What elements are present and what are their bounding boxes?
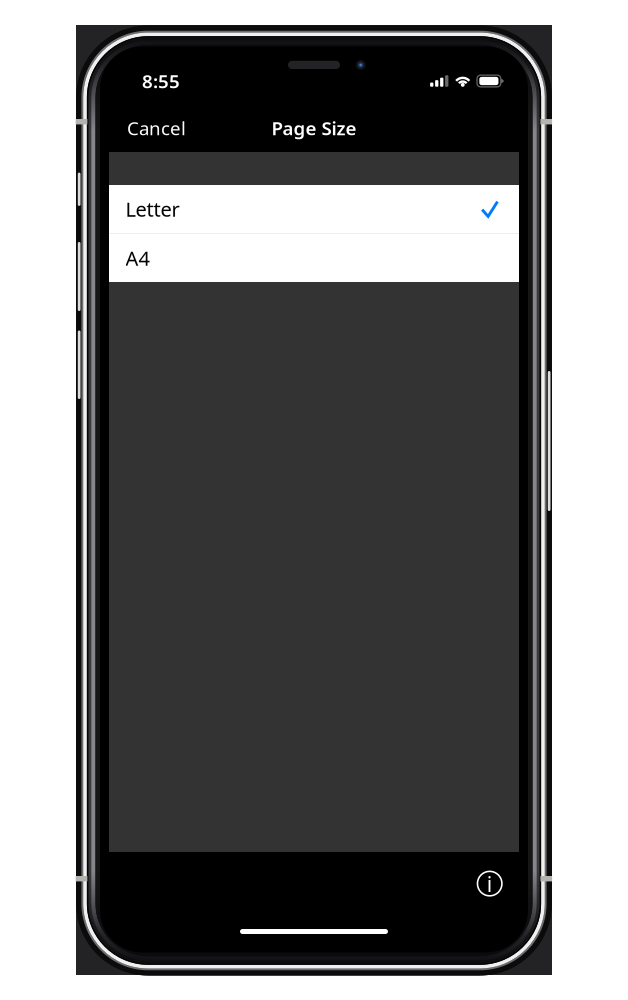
staticText: A4 (125, 245, 149, 271)
staticText: Cancel (127, 116, 186, 140)
staticText: Letter (125, 196, 179, 222)
button[interactable]: A4 (109, 234, 519, 282)
staticText: Page Size (271, 116, 356, 140)
button[interactable]: Info (468, 862, 512, 906)
button[interactable]: Cancel (116, 107, 197, 149)
staticText: i (487, 869, 493, 898)
button[interactable]: Letter (109, 185, 519, 233)
staticText: 8:55 (142, 69, 180, 93)
